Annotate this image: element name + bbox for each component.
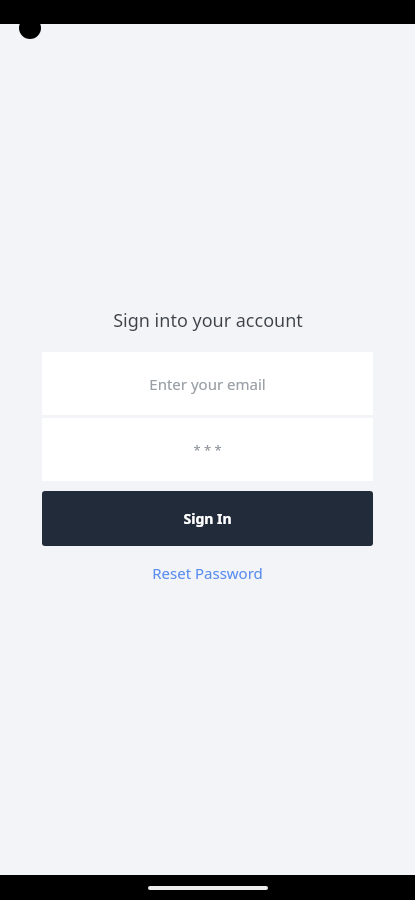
staticText: Sign In [183,509,232,528]
staticText: Reset Password [152,563,263,583]
staticText: Sign into your account [113,308,303,333]
other: Navigation bar [0,875,415,900]
button[interactable]: Enter your email [42,352,373,415]
staticText: * * * [193,441,222,459]
button[interactable]: Reset Password [138,557,277,589]
button[interactable]: * * * [42,418,373,481]
staticText: Enter your email [149,374,266,394]
button[interactable]: Sign In [42,491,373,546]
